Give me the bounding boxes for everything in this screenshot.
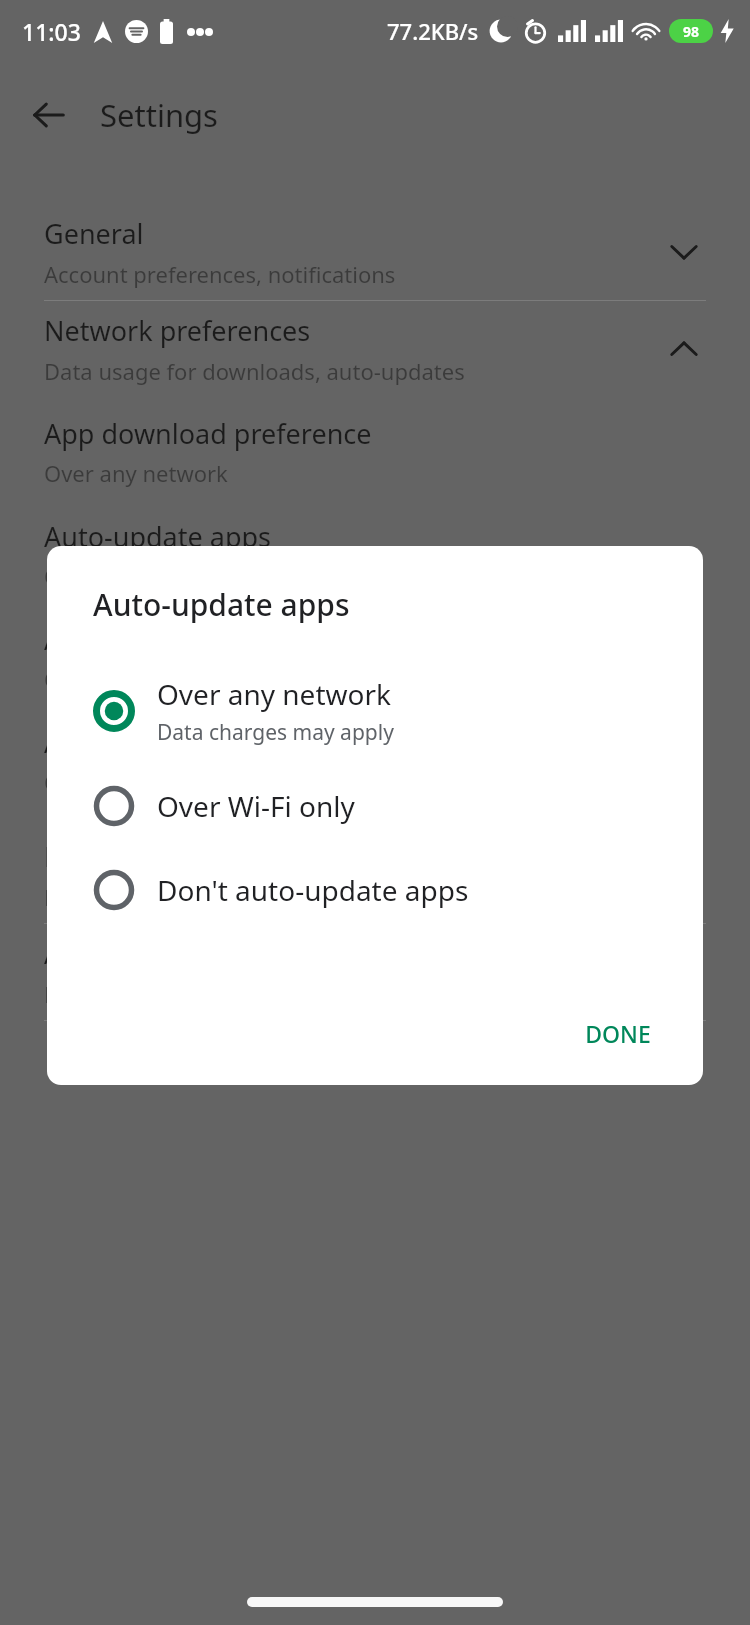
staticText: Family bbox=[44, 838, 127, 875]
staticText: Play Store, build version, device certif… bbox=[44, 979, 497, 1009]
staticText: Don't auto-update apps bbox=[157, 871, 469, 909]
staticText: Over any network bbox=[44, 767, 228, 797]
staticText: Over any network bbox=[157, 675, 391, 713]
staticText: Data usage for downloads, auto-updates bbox=[44, 356, 465, 386]
staticText: 77.2KB/s bbox=[387, 16, 479, 46]
staticText: DONE bbox=[585, 1018, 651, 1049]
staticText: Auto-play videos bbox=[44, 621, 255, 658]
staticText: Auto-update apps bbox=[44, 518, 272, 555]
staticText: 98 bbox=[683, 22, 700, 41]
staticText: Data charges may apply bbox=[157, 718, 394, 747]
button[interactable]: Family bbox=[0, 827, 750, 923]
staticText: About bbox=[44, 935, 121, 972]
button[interactable]: App download preference bbox=[0, 407, 750, 496]
button[interactable]: Over any network bbox=[47, 667, 703, 755]
button[interactable]: Auto-update apps bbox=[0, 510, 750, 599]
button[interactable]: Auto-update Play services bbox=[0, 716, 750, 805]
staticText: Over any network bbox=[44, 664, 228, 694]
button[interactable]: Over Wi-Fi only bbox=[47, 777, 703, 835]
button[interactable]: DONE bbox=[563, 1004, 673, 1063]
button[interactable]: General bbox=[0, 204, 750, 300]
staticText: Over any network bbox=[44, 458, 228, 488]
staticText: App download preference bbox=[44, 415, 372, 452]
staticText: Over any network bbox=[44, 561, 228, 591]
button[interactable]: About bbox=[0, 924, 750, 1020]
staticText: Network preferences bbox=[44, 312, 311, 349]
button[interactable]: Network preferences bbox=[0, 301, 750, 397]
staticText: Account preferences, notifications bbox=[44, 259, 396, 289]
staticText: Settings bbox=[100, 94, 218, 136]
button[interactable]: Auto-play videos bbox=[0, 613, 750, 702]
staticText: Over Wi-Fi only bbox=[157, 787, 355, 825]
staticText: 11:03 bbox=[22, 16, 81, 47]
staticText: Parental control, parent guide bbox=[44, 882, 354, 912]
staticText: General bbox=[44, 215, 144, 252]
staticText: Auto-update Play services bbox=[44, 724, 371, 761]
staticText: Auto-update apps bbox=[93, 584, 350, 625]
button[interactable]: Back bbox=[20, 86, 78, 144]
button[interactable]: Don't auto-update apps bbox=[47, 861, 703, 919]
